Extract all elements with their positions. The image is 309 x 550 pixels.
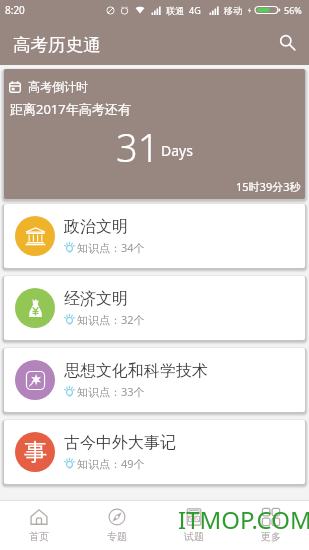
staticText: Days bbox=[161, 141, 193, 160]
staticText: 专题 bbox=[107, 530, 127, 543]
staticText: 更多 bbox=[261, 530, 281, 543]
button[interactable]: 更多 bbox=[232, 501, 309, 550]
staticText: 15时39分3秒 bbox=[236, 179, 301, 194]
staticText: 高考历史通 bbox=[13, 34, 101, 56]
staticText: 知识点：32个 bbox=[77, 312, 145, 327]
button[interactable]: 思想文化和科学技术 bbox=[4, 348, 305, 412]
staticText: 知识点：49个 bbox=[77, 456, 145, 471]
button[interactable]: 政治文明 bbox=[4, 204, 305, 268]
staticText: ITMOP.COM bbox=[178, 503, 309, 536]
staticText: 试题 bbox=[184, 530, 204, 543]
staticText: 首页 bbox=[29, 530, 49, 543]
button[interactable]: 经济文明 bbox=[4, 276, 305, 340]
staticText: 思想文化和科学技术 bbox=[64, 361, 208, 381]
button[interactable]: 首页 bbox=[0, 501, 78, 550]
staticText: 56% bbox=[284, 4, 302, 16]
staticText: 古今中外大事记 bbox=[64, 433, 176, 453]
staticText: 8:20 bbox=[5, 3, 25, 17]
button[interactable]: 专题 bbox=[78, 501, 155, 550]
staticText: 知识点：33个 bbox=[77, 384, 145, 399]
staticText: 知识点：34个 bbox=[77, 240, 145, 255]
button[interactable]: 事 bbox=[4, 420, 305, 484]
staticText: 移动 bbox=[224, 5, 242, 16]
staticText: 4G bbox=[189, 4, 201, 16]
staticText: 事 bbox=[24, 438, 47, 467]
staticText: 联通 bbox=[166, 5, 184, 16]
staticText: 距离2017年高考还有 bbox=[10, 100, 131, 118]
button[interactable]: Search bbox=[264, 20, 309, 65]
staticText: 经济文明 bbox=[64, 289, 128, 309]
button[interactable]: 高考倒计时 bbox=[4, 69, 305, 199]
staticText: 31 bbox=[116, 121, 160, 173]
staticText: 高考倒计时 bbox=[28, 79, 88, 94]
button[interactable]: 试题 bbox=[155, 501, 232, 550]
staticText: 政治文明 bbox=[64, 217, 128, 237]
